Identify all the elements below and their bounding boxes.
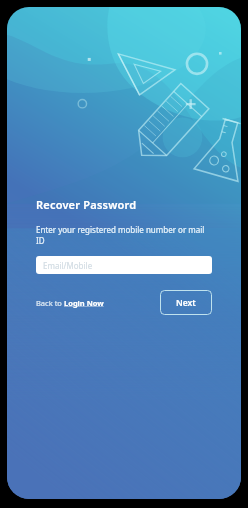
staticText: Next (176, 297, 196, 309)
staticText: Email/Mobile (43, 260, 93, 271)
staticText: Enter your registered mobile number or m… (36, 224, 212, 246)
staticText: Back to (36, 298, 64, 308)
staticText: Login Now (64, 298, 104, 308)
staticText: Recover Password (36, 197, 137, 212)
button[interactable]: Back to (36, 294, 104, 312)
button[interactable]: Email/Mobile (36, 256, 212, 274)
button[interactable]: Next (160, 290, 212, 315)
